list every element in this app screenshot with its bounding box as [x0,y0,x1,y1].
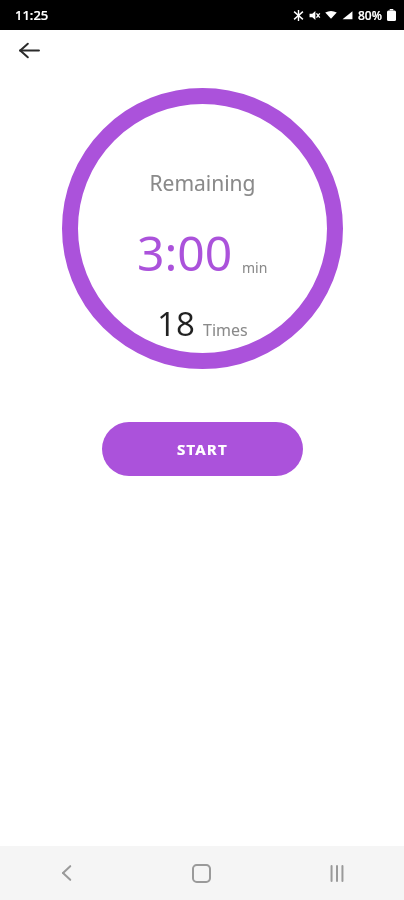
staticText: Remaining [149,169,256,198]
staticText: 11:25 [15,6,49,24]
button[interactable]: START [102,422,303,476]
staticText: 80% [358,7,382,23]
staticText: 3:00 [137,220,233,285]
staticText: START [177,439,228,459]
staticText: Times [203,319,248,341]
button[interactable]: Back [10,31,48,69]
button[interactable]: Home [134,846,269,900]
staticText: 18 [157,301,195,346]
staticText: min [242,258,268,277]
button[interactable]: Back [0,846,134,900]
button[interactable]: Recent apps [269,846,404,900]
